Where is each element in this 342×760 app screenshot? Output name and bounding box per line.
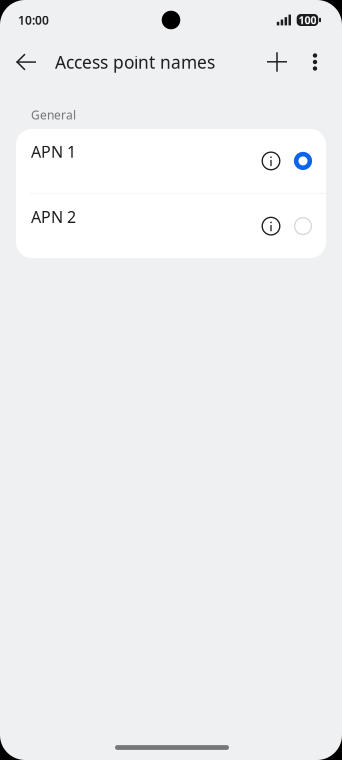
staticText: APN 1 (31, 141, 76, 162)
button[interactable]: More options (297, 40, 333, 84)
staticText: 100 (298, 13, 316, 27)
button[interactable]: APN 2 (16, 194, 326, 258)
staticText: Access point names (55, 50, 215, 73)
button[interactable]: Select APN 1 (287, 129, 319, 192)
staticText: General (31, 107, 76, 123)
button[interactable]: Back (5, 40, 47, 84)
button[interactable]: APN 1 details (255, 129, 287, 192)
staticText: 10:00 (18, 12, 49, 28)
button[interactable]: APN 2 details (255, 195, 287, 258)
button[interactable]: APN 1 (16, 129, 326, 193)
staticText: APN 2 (31, 206, 76, 227)
button[interactable]: Select APN 2 (287, 195, 319, 258)
button[interactable]: Add APN (257, 40, 297, 84)
